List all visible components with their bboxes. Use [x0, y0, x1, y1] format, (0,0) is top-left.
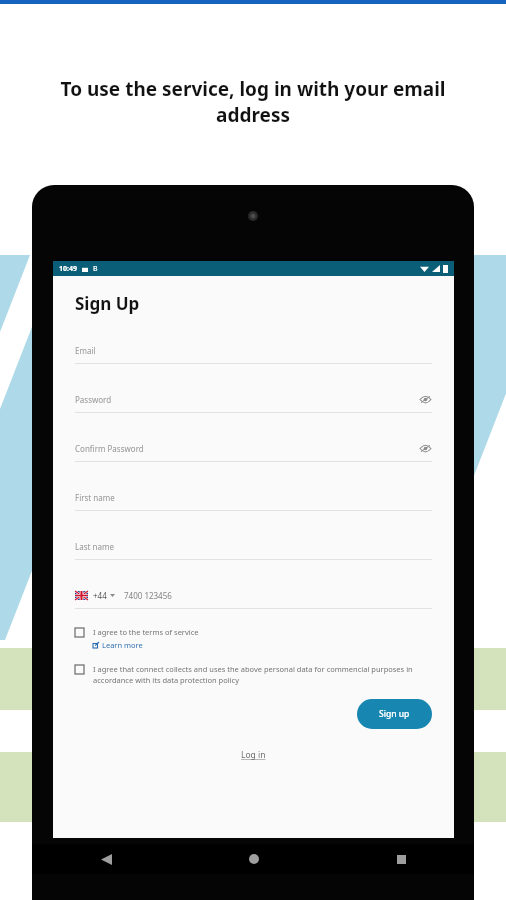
button[interactable]: Log in: [237, 745, 270, 765]
button[interactable]: Confirm Password: [75, 435, 432, 484]
button[interactable]: Home: [237, 844, 271, 874]
staticText: Confirm Password: [75, 443, 144, 454]
staticText: Sign Up: [75, 292, 140, 315]
staticText: +44: [93, 590, 107, 601]
staticText: Sign up: [379, 708, 410, 720]
staticText: Email: [75, 345, 96, 356]
button[interactable]: I agree that connect collects and uses t…: [75, 664, 432, 685]
other: Toggle visibility: [418, 392, 432, 406]
button[interactable]: Last name: [75, 533, 432, 582]
staticText: First name: [75, 492, 115, 503]
staticText: Log in: [241, 749, 266, 761]
button[interactable]: Sign up: [357, 699, 432, 729]
button[interactable]: +44: [75, 582, 432, 609]
staticText: I agree that connect collects and uses t…: [93, 664, 432, 685]
staticText: To use the service, log in with your ema…: [28, 76, 478, 128]
staticText: Last name: [75, 541, 114, 552]
staticText: I agree to the terms of service: [93, 627, 199, 637]
button[interactable]: Back: [89, 844, 123, 874]
staticText: B: [93, 264, 98, 274]
staticText: 7400 123456: [124, 590, 172, 601]
button[interactable]: First name: [75, 484, 432, 533]
button[interactable]: Email: [75, 337, 432, 386]
button[interactable]: Password: [75, 386, 432, 435]
other: Toggle visibility: [418, 441, 432, 455]
button[interactable]: I agree to the terms of service: [75, 627, 432, 650]
button[interactable]: Recents: [384, 844, 418, 874]
staticText: Password: [75, 394, 112, 405]
staticText: Learn more: [102, 640, 143, 650]
staticText: 10:49: [59, 264, 77, 274]
